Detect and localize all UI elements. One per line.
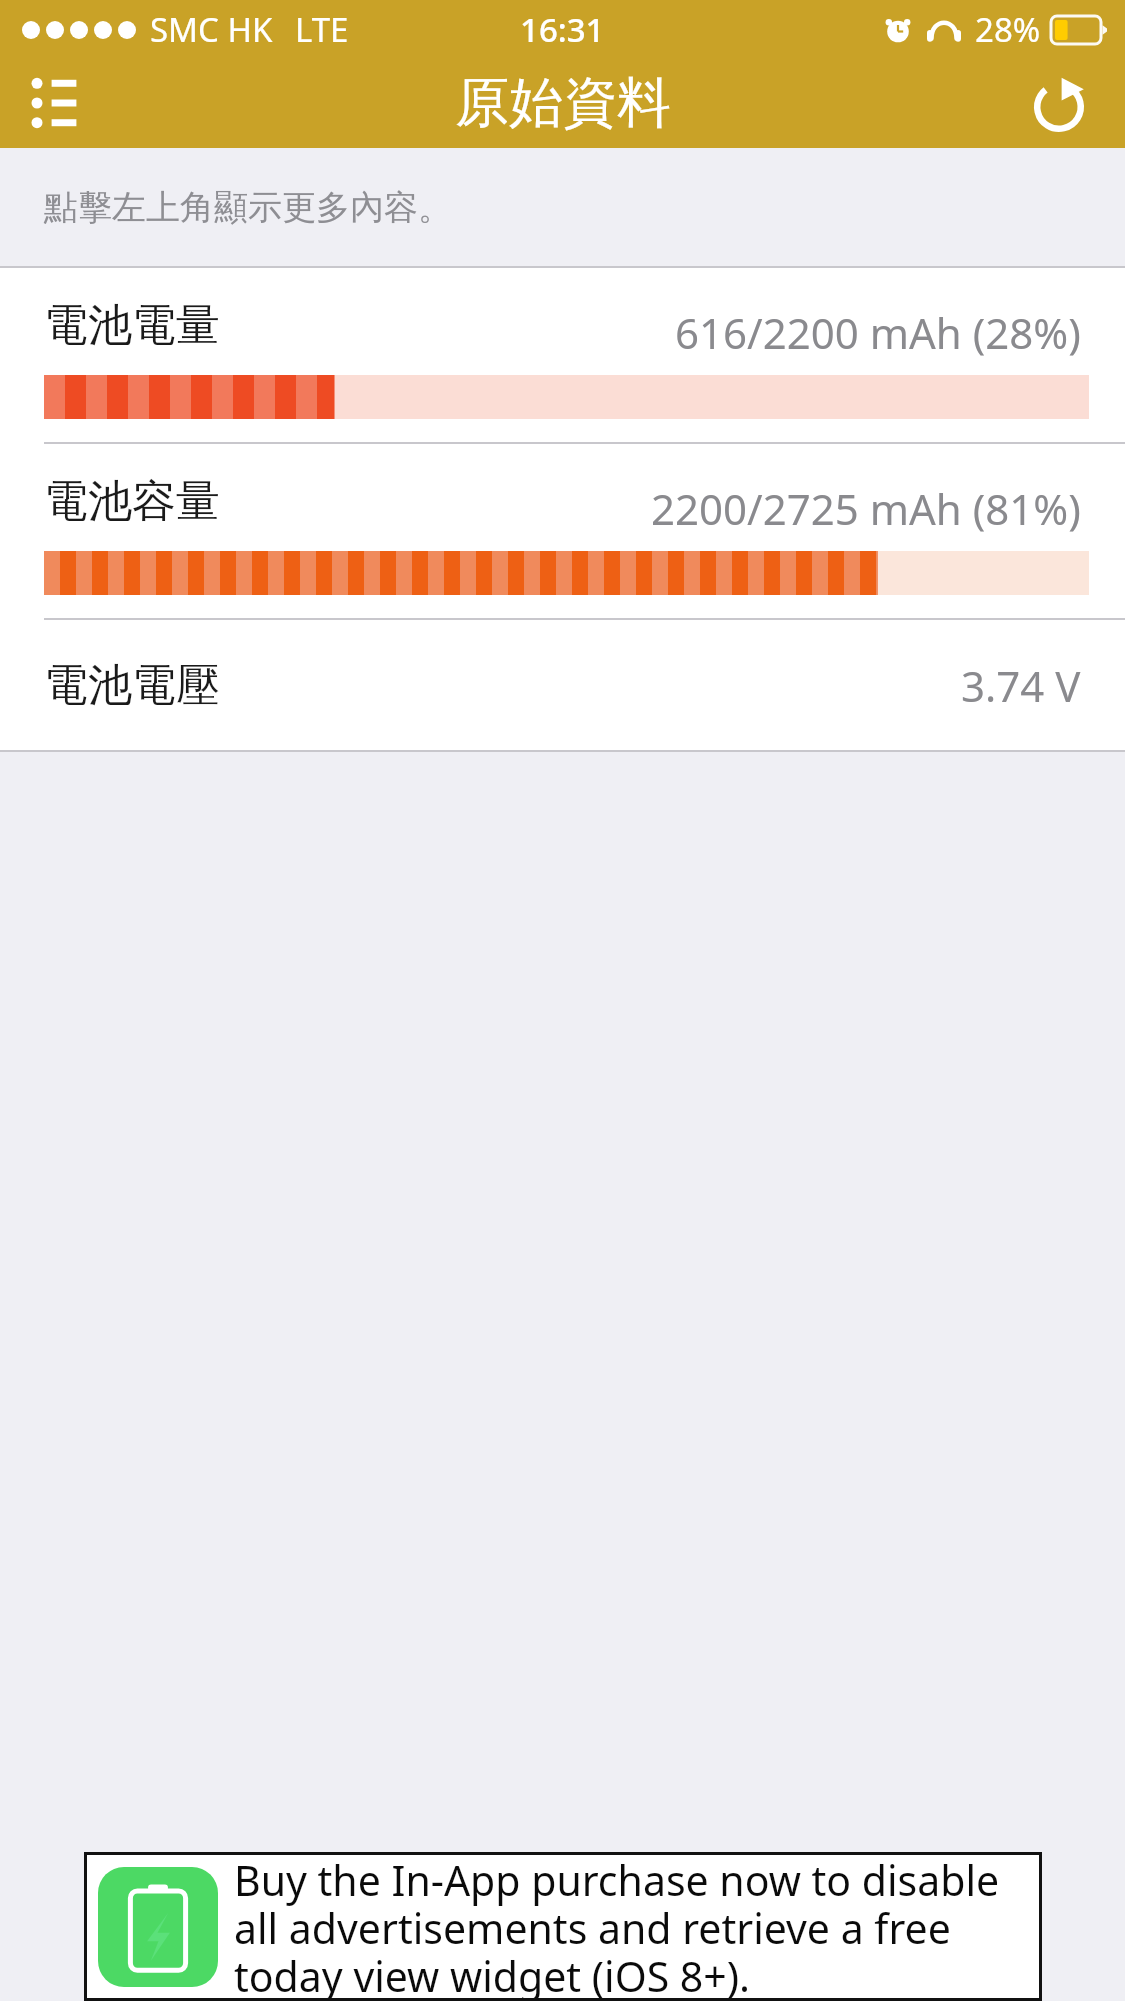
button[interactable]: 電池容量 [0, 444, 1125, 618]
button[interactable]: Buy the In-App purchase now to disable a… [84, 1852, 1042, 2001]
staticText: 電池容量 [44, 474, 220, 529]
staticText: SMC HK [150, 7, 273, 52]
staticText: Buy the In-App purchase now to disable a… [234, 1852, 1032, 2001]
button[interactable]: Refresh [1011, 55, 1107, 151]
button[interactable]: 電池電量 [0, 268, 1125, 442]
staticText: 16:31 [520, 7, 605, 52]
staticText: 3.74 V [961, 657, 1081, 714]
staticText: LTE [295, 7, 349, 52]
staticText: 電池電壓 [44, 658, 220, 713]
staticText: 原始資料 [455, 69, 671, 137]
staticText: 616/2200 mAh (28%) [675, 304, 1081, 361]
staticText: 電池電量 [44, 298, 220, 353]
staticText: 28% [975, 7, 1041, 52]
button[interactable]: 電池電壓 [0, 620, 1125, 750]
staticText: 2200/2725 mAh (81%) [651, 480, 1081, 537]
button[interactable]: Menu [18, 57, 110, 149]
staticText: 點擊左上角顯示更多內容。 [44, 186, 452, 229]
